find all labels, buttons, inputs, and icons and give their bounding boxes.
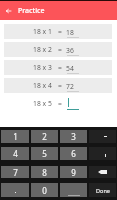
staticText: 8 <box>42 167 47 178</box>
staticText: 3 <box>71 131 76 142</box>
staticText: = <box>58 63 62 72</box>
staticText: 36 <box>66 46 74 55</box>
button[interactable]: 9 <box>60 166 87 178</box>
other: Comma <box>89 147 116 160</box>
button[interactable]: Back <box>0 2 17 19</box>
button[interactable]: Done <box>89 183 116 197</box>
staticText: 18 x 3 <box>33 63 52 72</box>
staticText: 0 <box>42 185 47 196</box>
staticText: 9 <box>71 167 76 178</box>
staticText: 18 x 1 <box>33 27 52 36</box>
staticText: 72 <box>66 82 74 91</box>
other: Decimal point <box>1 183 29 197</box>
staticText: = <box>58 27 62 36</box>
staticText: 18 <box>66 28 74 37</box>
other: Minus <box>89 130 116 143</box>
button[interactable]: 4 <box>1 147 29 160</box>
button[interactable]: 18 x 1 <box>4 24 112 39</box>
staticText: = <box>58 81 62 90</box>
staticText: 1 <box>13 131 18 142</box>
staticText: = <box>58 99 62 108</box>
staticText: 54 <box>66 64 74 73</box>
staticText: 7 <box>13 167 18 178</box>
other: Space <box>60 183 87 197</box>
staticText: 18 x 2 <box>33 45 52 54</box>
staticText: 2 <box>42 131 47 142</box>
staticText: = <box>58 45 62 54</box>
button[interactable]: 18 x 5 <box>4 96 112 111</box>
other: Backspace <box>98 170 107 174</box>
staticText: 18 x 5 <box>33 99 52 108</box>
staticText: 4 <box>13 148 18 159</box>
staticText: Practice <box>18 6 45 16</box>
button[interactable]: 3 <box>60 130 87 143</box>
button[interactable]: Decimal point <box>1 183 29 197</box>
button[interactable]: Minus <box>89 130 116 143</box>
staticText: 5 <box>42 148 47 159</box>
staticText: 6 <box>71 148 76 159</box>
button[interactable]: Backspace <box>89 166 116 178</box>
button[interactable]: Comma <box>89 147 116 160</box>
button[interactable]: 6 <box>60 147 87 160</box>
button[interactable]: 18 x 2 <box>4 42 112 57</box>
button[interactable]: Space <box>60 183 87 197</box>
button[interactable]: 0 <box>31 183 58 197</box>
button[interactable]: 18 x 3 <box>4 60 112 75</box>
staticText: 18 x 4 <box>33 81 52 90</box>
button[interactable]: 8 <box>31 166 58 178</box>
staticText: Done <box>96 187 110 194</box>
button[interactable]: 5 <box>31 147 58 160</box>
button[interactable]: 1 <box>1 130 29 143</box>
button[interactable]: 2 <box>31 130 58 143</box>
button[interactable]: 7 <box>1 166 29 178</box>
button[interactable]: 18 x 4 <box>4 78 112 93</box>
